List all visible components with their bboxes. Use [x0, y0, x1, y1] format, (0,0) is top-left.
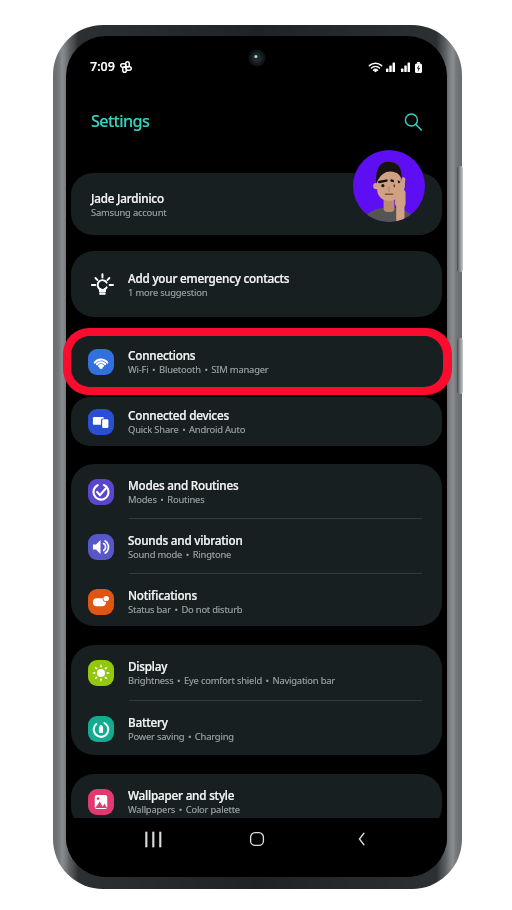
staticText: Sounds and vibration [128, 532, 243, 548]
staticText: Modes and Routines [128, 477, 239, 493]
staticText: Display [128, 658, 168, 674]
button[interactable]: Jade Jardinico [71, 173, 442, 235]
button[interactable]: Add your emergency contacts [71, 251, 442, 317]
button[interactable]: Recents [127, 814, 177, 864]
staticText: Modes • Routines [128, 493, 205, 506]
staticText: Add your emergency contacts [128, 270, 290, 286]
staticText: Notifications [128, 587, 197, 603]
staticText: Jade Jardinico [91, 190, 164, 206]
button[interactable]: Notifications [71, 574, 442, 626]
staticText: Status bar • Do not disturb [128, 603, 243, 616]
button[interactable]: Search [391, 100, 435, 144]
staticText: Brightness • Eye comfort shield • Naviga… [128, 674, 335, 687]
button[interactable]: Wallpaper and style [71, 774, 442, 830]
staticText: Sound mode • Ringtone [128, 548, 232, 561]
staticText: Wallpapers • Color palette [128, 803, 240, 816]
staticText: 1 more suggestion [128, 286, 208, 299]
button[interactable]: Home [232, 814, 282, 864]
staticText: Settings [91, 110, 150, 132]
staticText: Samsung account [91, 206, 167, 219]
staticText: Wi-Fi • Bluetooth • SIM manager [128, 363, 269, 376]
button[interactable]: Wallpaper and style [71, 774, 442, 829]
button[interactable]: Display [71, 645, 442, 700]
button[interactable] [71, 336, 442, 385]
staticText: Battery [128, 714, 168, 730]
staticText: Connections [128, 347, 196, 363]
button[interactable]: Sounds and vibration [71, 519, 442, 574]
button[interactable]: Modes and Routines [71, 464, 442, 519]
staticText: Connected devices [128, 407, 229, 423]
button[interactable]: Back [337, 814, 387, 864]
button[interactable]: Connected devices [71, 397, 442, 446]
staticText: 7:09 [90, 58, 115, 75]
staticText: Power saving • Charging [128, 730, 234, 743]
button[interactable]: Battery [71, 701, 442, 755]
button[interactable]: Profile picture [353, 150, 425, 222]
staticText: Quick Share • Android Auto [128, 423, 246, 436]
staticText: Wallpaper and style [128, 787, 235, 803]
